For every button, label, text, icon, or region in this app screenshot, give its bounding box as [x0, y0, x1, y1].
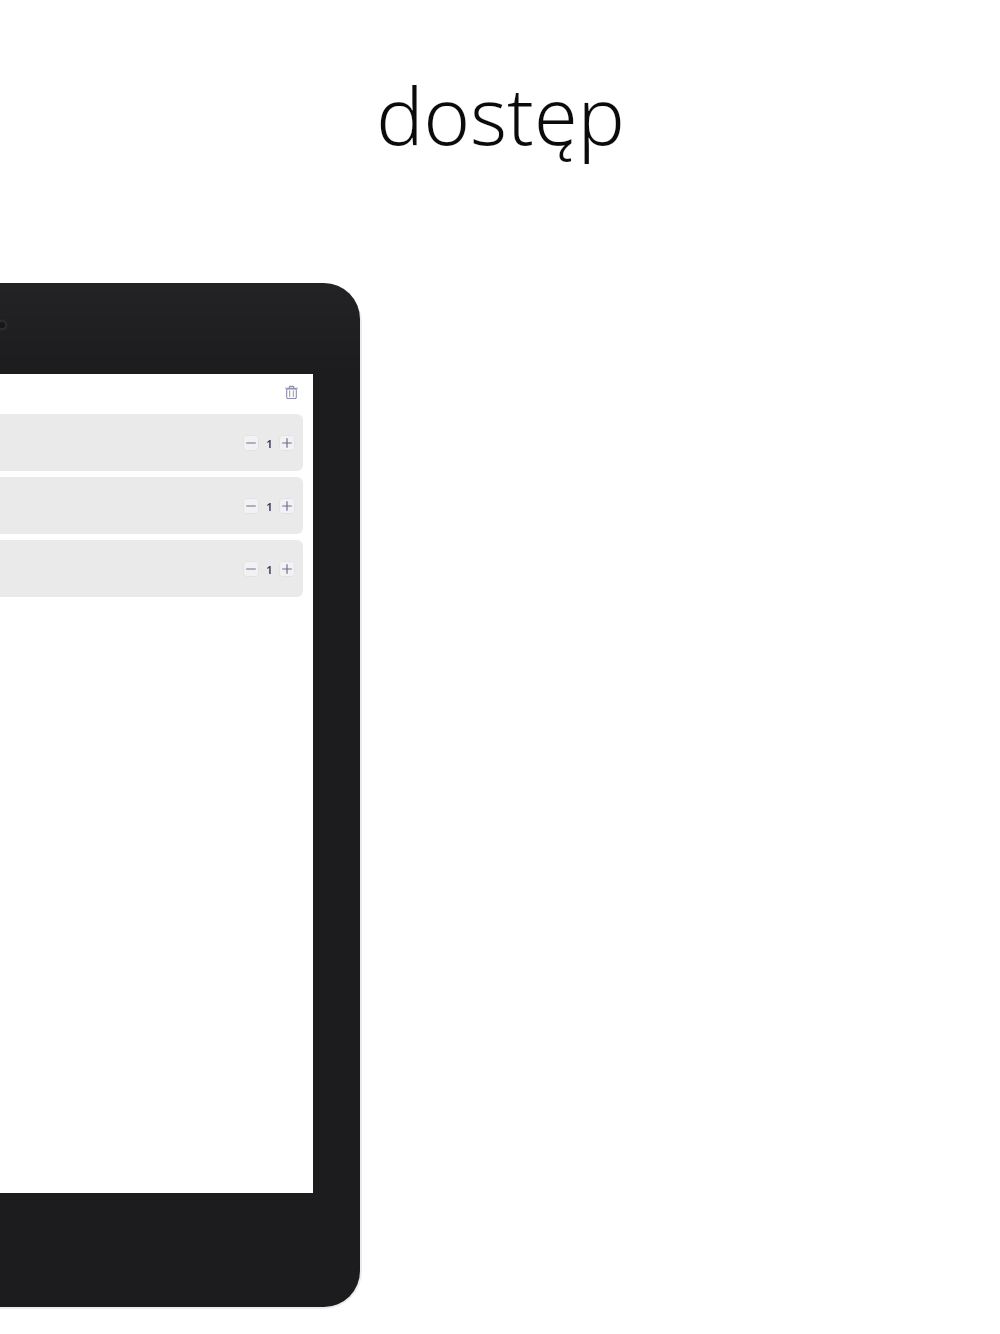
staticText: 1 — [266, 436, 273, 451]
button[interactable]: Zmniejsz ilość — [0, 477, 303, 534]
button[interactable]: Zwiększ ilość — [279, 561, 295, 577]
button[interactable]: Zmniejsz ilość — [0, 414, 303, 471]
staticText: 1 — [266, 562, 273, 577]
button[interactable]: Usuń — [279, 380, 303, 404]
button[interactable]: Zwiększ ilość — [279, 435, 295, 451]
staticText: dostęp — [376, 61, 625, 169]
staticText: 1 — [266, 499, 273, 514]
button[interactable]: Zmniejsz ilość — [243, 435, 259, 451]
button[interactable]: Zwiększ ilość — [279, 498, 295, 514]
button[interactable]: Zmniejsz ilość — [243, 498, 259, 514]
button[interactable]: Zmniejsz ilość — [0, 540, 303, 597]
button[interactable]: Zmniejsz ilość — [243, 561, 259, 577]
